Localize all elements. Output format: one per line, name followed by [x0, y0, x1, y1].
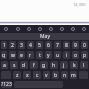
staticText: s [13, 62, 16, 69]
staticText: e [20, 52, 23, 59]
button[interactable]: May [40, 33, 50, 40]
staticText: b [54, 72, 58, 79]
button[interactable]: o [72, 51, 79, 59]
button[interactable]: Edit [34, 25, 45, 33]
button[interactable]: s [10, 61, 18, 69]
button[interactable]: x [23, 71, 31, 79]
button[interactable]: n [61, 71, 68, 79]
button[interactable]: l [80, 61, 88, 69]
staticText: 4 [29, 42, 32, 49]
staticText: k [73, 62, 76, 69]
button[interactable]: e [18, 51, 25, 59]
button[interactable]: 1 [1, 41, 7, 49]
button[interactable]: d [20, 61, 28, 69]
staticText: 3 [20, 42, 23, 49]
staticText: l [83, 62, 85, 69]
staticText: c [36, 72, 39, 79]
staticText: y [47, 52, 50, 59]
staticText: 1 [3, 42, 6, 49]
staticText: u [56, 52, 60, 59]
button[interactable]: w [9, 51, 16, 59]
staticText: 9 [74, 42, 77, 49]
staticText: p [83, 52, 87, 59]
button[interactable]: t [36, 51, 43, 59]
button[interactable]: GIF [12, 25, 23, 33]
button[interactable]: p [81, 51, 88, 59]
staticText: x [26, 72, 29, 79]
staticText: 0 [83, 42, 86, 49]
staticText: m [71, 72, 76, 79]
button[interactable]: 7 [54, 41, 61, 49]
staticText: j [63, 62, 65, 69]
button[interactable]: 2 [9, 41, 16, 49]
staticText: q [2, 52, 6, 59]
staticText: f [33, 62, 35, 69]
staticText: 6 [47, 42, 50, 49]
button[interactable]: 0 [81, 41, 88, 49]
button[interactable]: r [27, 51, 34, 59]
staticText: d [22, 62, 26, 69]
staticText: g [42, 62, 46, 69]
button[interactable]: i [63, 51, 70, 59]
button[interactable]: 3 [18, 41, 25, 49]
staticText: h [52, 62, 56, 69]
staticText: v [45, 72, 48, 79]
staticText: z [16, 72, 19, 79]
button[interactable]: h [50, 61, 58, 69]
staticText: 14,000 [73, 2, 86, 7]
button[interactable]: Translate [67, 25, 78, 33]
button[interactable]: q [1, 51, 7, 59]
staticText: 2 [11, 42, 14, 49]
staticText: ?123 [1, 81, 12, 88]
button[interactable]: More [78, 25, 89, 33]
button[interactable]: f [30, 61, 38, 69]
button[interactable]: v [43, 71, 50, 79]
staticText: r [29, 52, 32, 59]
button[interactable]: c [33, 71, 41, 79]
staticText: a [3, 62, 6, 69]
button[interactable]: a [1, 61, 8, 69]
staticText: 5 [38, 42, 41, 49]
button[interactable]: Clipboard [23, 25, 34, 33]
staticText: w [11, 52, 15, 59]
button[interactable]: m [70, 71, 77, 79]
staticText: n [63, 72, 67, 79]
button[interactable]: 9 [72, 41, 79, 49]
button[interactable]: b [52, 71, 59, 79]
button[interactable]: Emoji [56, 25, 67, 33]
button[interactable]: 5 [36, 41, 43, 49]
button[interactable]: y [45, 51, 52, 59]
button[interactable]: u [54, 51, 61, 59]
staticText: t [39, 52, 41, 59]
button[interactable]: Settings [45, 25, 56, 33]
button[interactable]: z [13, 71, 21, 79]
button[interactable]: 6 [45, 41, 52, 49]
button[interactable]: k [70, 61, 78, 69]
button[interactable]: ?123 [1, 81, 12, 88]
button[interactable]: j [60, 61, 68, 69]
staticText: 8 [65, 42, 68, 49]
button[interactable]: g [40, 61, 48, 69]
button[interactable]: 8 [63, 41, 70, 49]
staticText: 7 [56, 42, 59, 49]
button[interactable]: Sticker [0, 25, 12, 33]
staticText: i [66, 52, 68, 59]
staticText: o [74, 52, 78, 59]
button[interactable]: 4 [27, 41, 34, 49]
